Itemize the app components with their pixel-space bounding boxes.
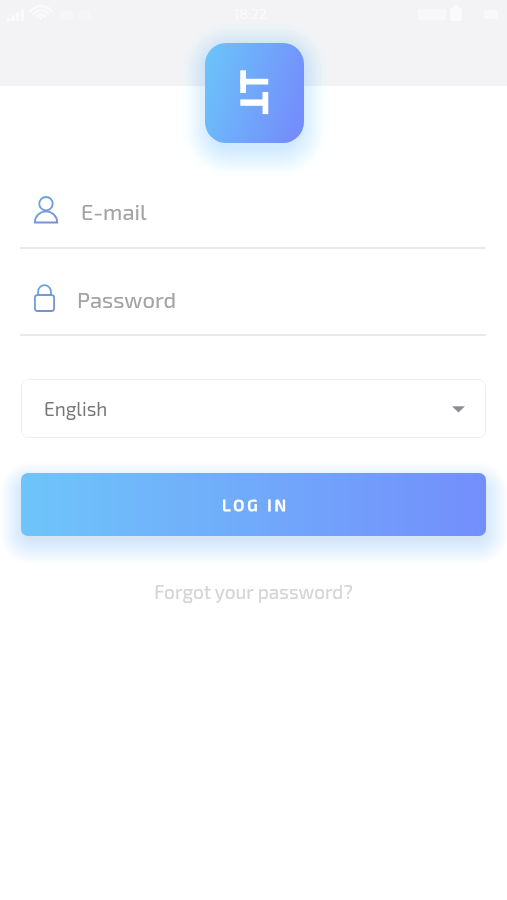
button[interactable]: LOG IN [21, 473, 486, 536]
staticText: LOG IN [222, 495, 290, 515]
button[interactable]: Forgot your password? [0, 576, 507, 606]
staticText: English [44, 397, 108, 420]
staticText: Forgot your password? [154, 580, 353, 603]
staticText: E-mail [81, 198, 147, 224]
staticText: Password [77, 286, 177, 312]
other: E-mail [33, 195, 59, 224]
button[interactable]: App logo [205, 43, 304, 143]
other: Open language list [452, 402, 465, 415]
button[interactable]: English [21, 379, 486, 438]
other: Password [34, 283, 55, 312]
